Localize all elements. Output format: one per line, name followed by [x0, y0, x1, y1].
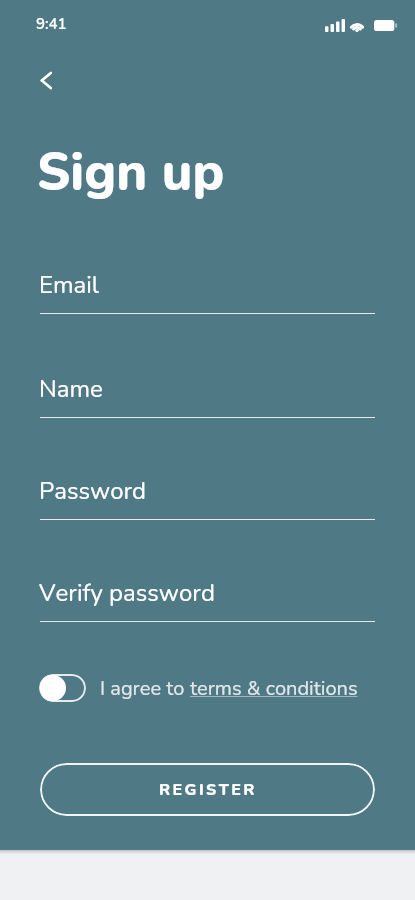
staticText: REGISTER	[159, 779, 257, 801]
staticText: Verify password	[39, 577, 215, 610]
staticText: Sign up	[37, 136, 225, 207]
button[interactable]: REGISTER	[40, 763, 375, 816]
button[interactable]: I agree to	[39, 674, 358, 702]
staticText: 9:41	[36, 14, 67, 34]
staticText: Name	[39, 373, 103, 406]
staticText: Password	[39, 475, 147, 508]
staticText: I agree to	[100, 675, 190, 702]
staticText: terms & conditions	[190, 675, 358, 702]
button[interactable]: Back	[23, 58, 67, 102]
staticText: Email	[39, 269, 99, 302]
